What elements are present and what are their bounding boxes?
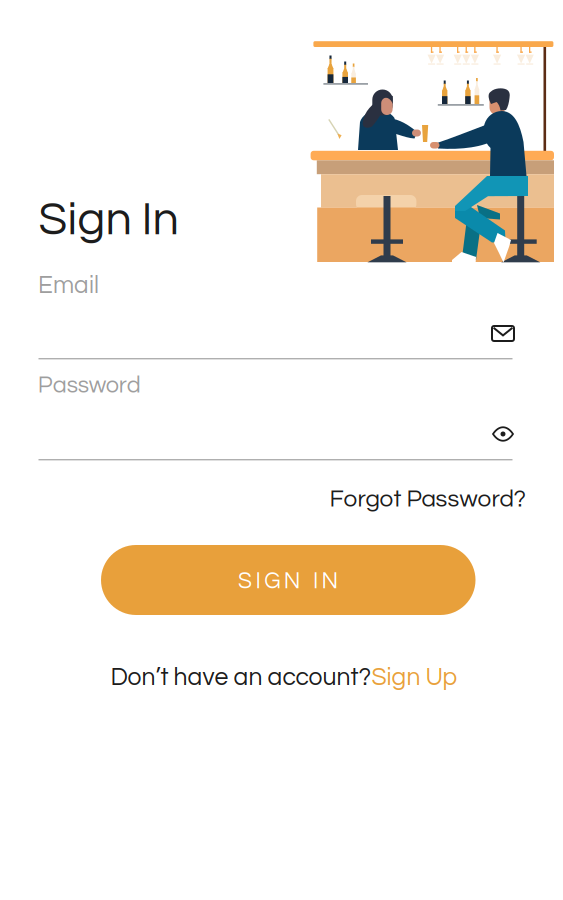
staticText: Forgot Password? <box>329 487 525 512</box>
staticText: Sign Up <box>372 665 458 690</box>
staticText: Sign In <box>38 196 178 244</box>
staticText: SIGN IN <box>238 570 339 593</box>
button[interactable]: Show password <box>492 427 514 441</box>
button[interactable]: Email <box>492 326 514 341</box>
staticText: Don’t have an account? <box>110 665 371 690</box>
button[interactable]: Email <box>38 273 512 359</box>
button[interactable]: Sign Up <box>372 665 458 690</box>
staticText: Password <box>38 373 141 397</box>
button[interactable]: SIGN IN <box>101 545 475 615</box>
button[interactable]: Password <box>38 373 512 460</box>
button[interactable]: Forgot Password? <box>329 487 525 512</box>
staticText: Email <box>38 273 99 298</box>
